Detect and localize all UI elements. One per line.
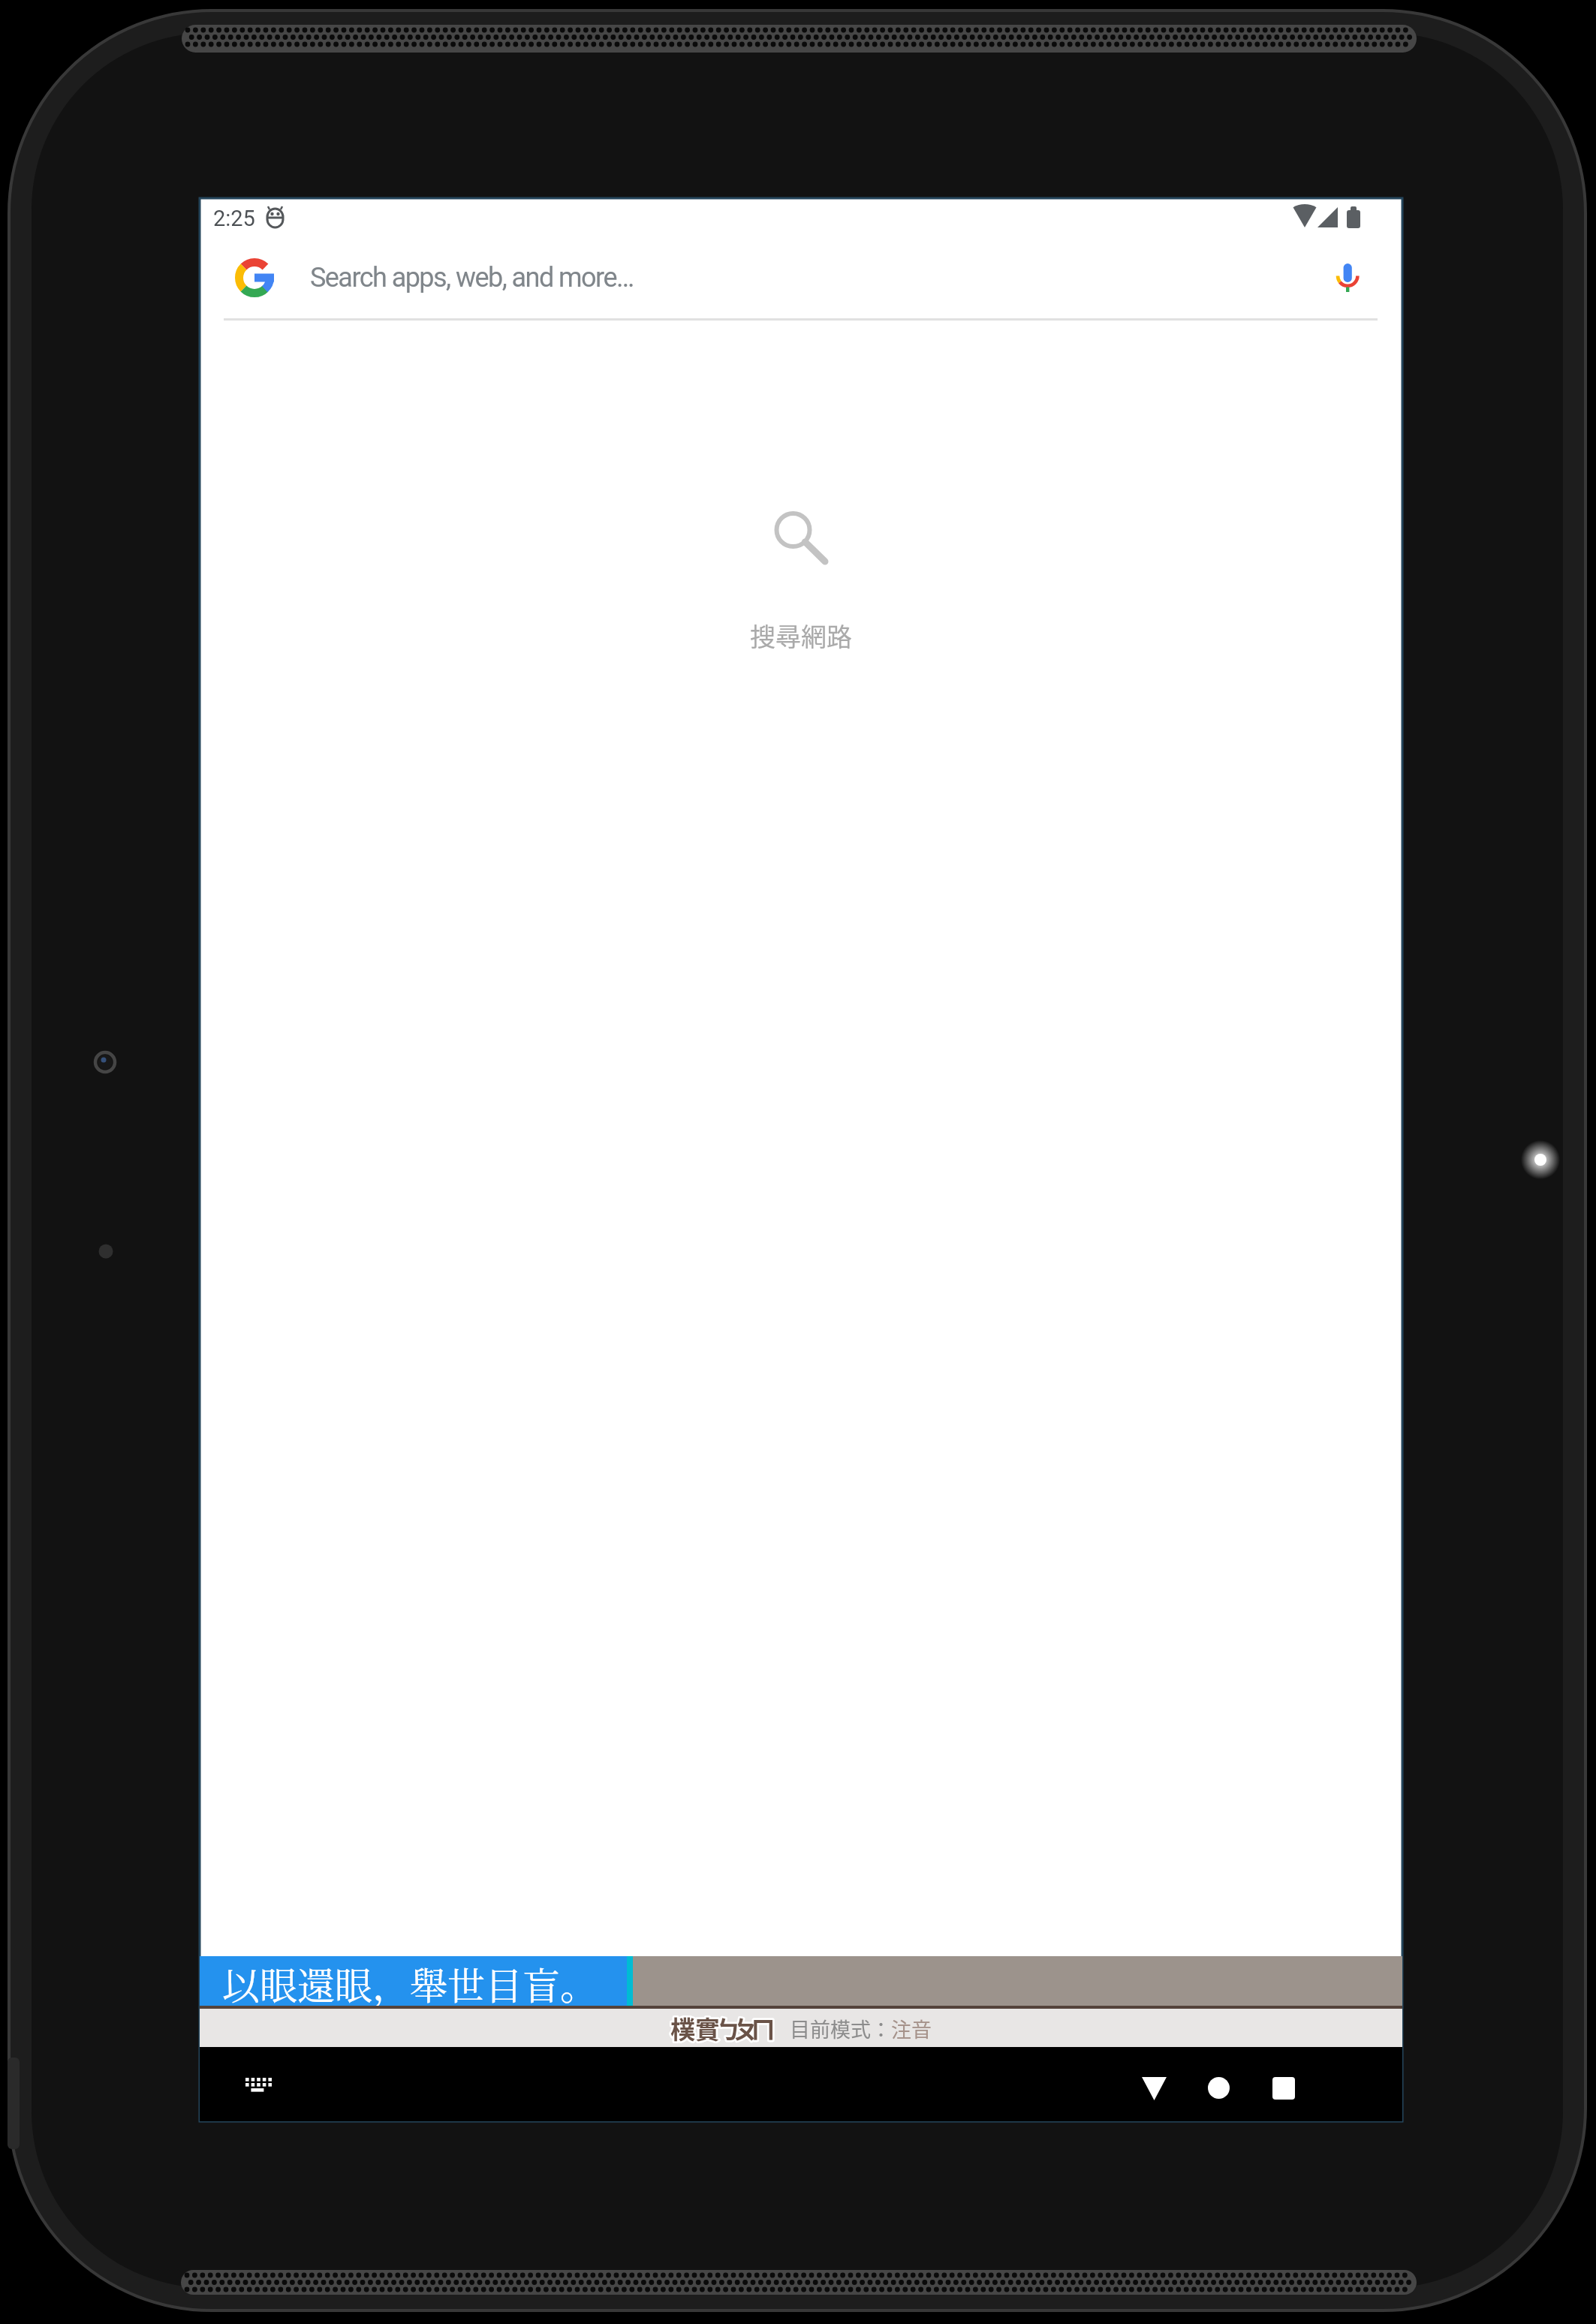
button[interactable]	[1248, 2051, 1320, 2125]
button[interactable]: 樸實	[200, 2009, 1402, 2048]
staticText: ㄅㄆㄇ	[720, 2010, 772, 2046]
staticText: Search apps, web, and more…	[310, 262, 634, 294]
button[interactable]	[1118, 2051, 1190, 2125]
staticText: 2:25	[213, 206, 255, 231]
staticText: ㄅㄆㄇ	[720, 2010, 772, 2046]
staticText: 樸實	[670, 2010, 720, 2046]
button[interactable]	[1182, 2051, 1254, 2125]
staticText: 樸實	[670, 2010, 720, 2046]
staticText: 以眼還眼，舉世目盲。	[222, 1956, 598, 2006]
staticText: 搜尋網路	[750, 617, 852, 653]
button[interactable]: 以眼還眼，舉世目盲。	[200, 1956, 627, 2006]
staticText: 注音	[891, 2014, 932, 2043]
button[interactable]: Search apps, web, and more…	[200, 242, 1402, 320]
staticText: 目前模式：	[790, 2014, 891, 2043]
button[interactable]	[245, 2073, 272, 2097]
button[interactable]	[1329, 255, 1367, 299]
